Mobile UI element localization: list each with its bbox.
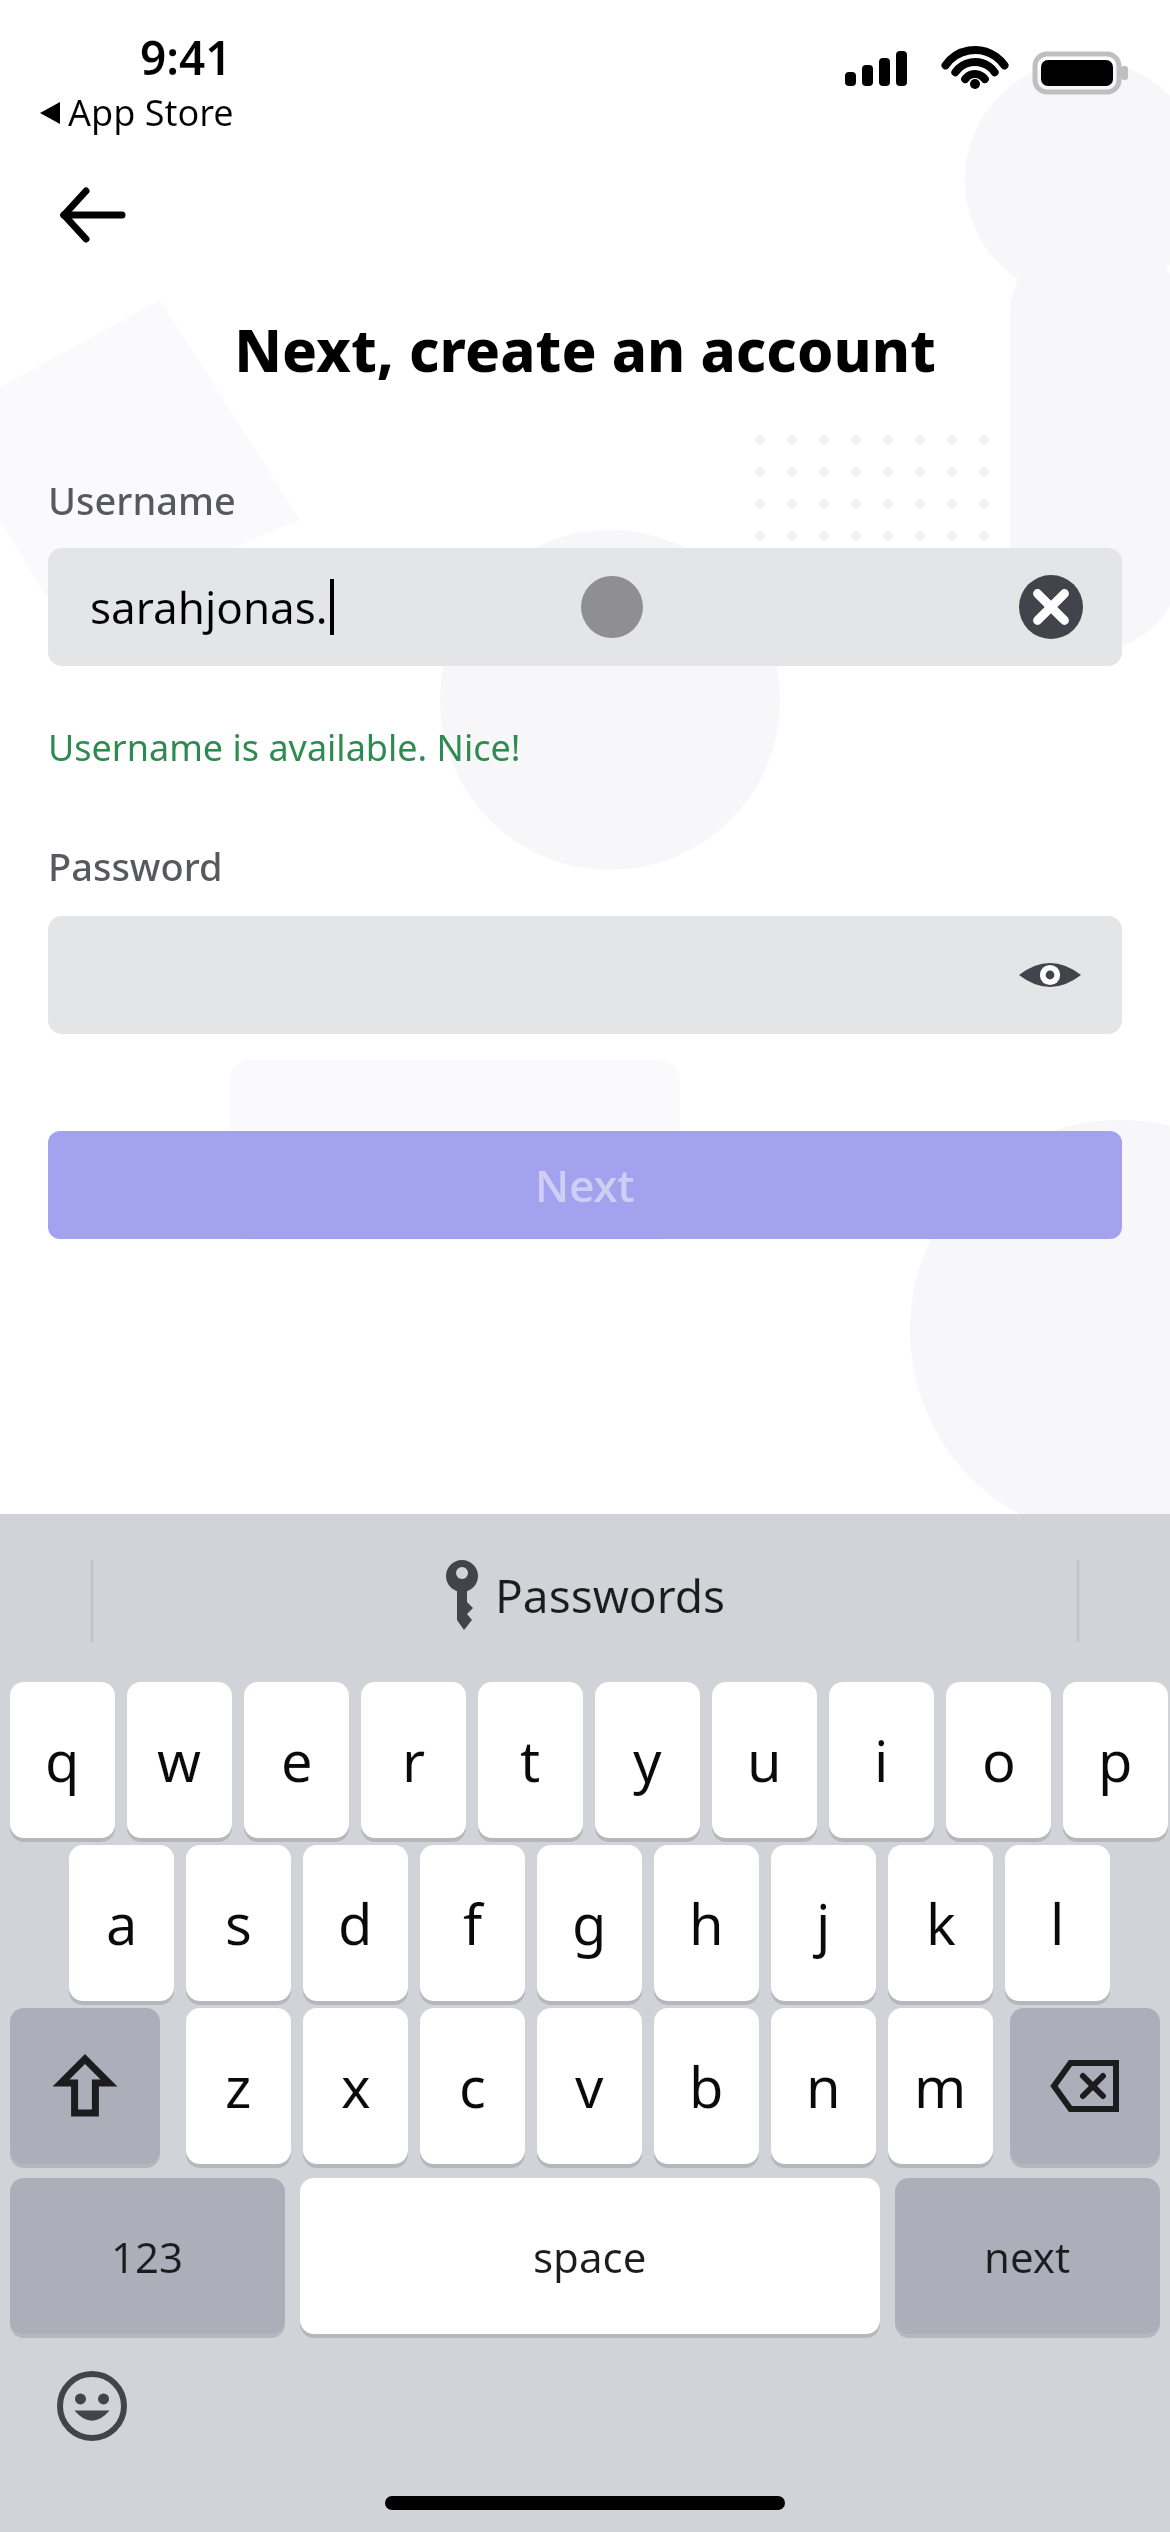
button[interactable]: k xyxy=(888,1845,993,2001)
staticText: Next xyxy=(535,1155,635,1215)
button[interactable]: a xyxy=(69,1845,174,2001)
staticText: next xyxy=(984,2228,1071,2285)
staticText: d xyxy=(338,1885,373,1961)
button[interactable]: l xyxy=(1005,1845,1110,2001)
staticText: a xyxy=(106,1885,138,1961)
staticText: o xyxy=(982,1722,1016,1798)
staticText: z xyxy=(225,2048,252,2124)
staticText: p xyxy=(1098,1722,1133,1798)
staticText: u xyxy=(747,1722,782,1798)
button[interactable]: space xyxy=(300,2178,880,2334)
staticText: l xyxy=(1050,1885,1065,1961)
button[interactable]: d xyxy=(303,1845,408,2001)
staticText: f xyxy=(463,1885,483,1961)
staticText: c xyxy=(459,2048,486,2124)
staticText: i xyxy=(874,1722,889,1798)
staticText: m xyxy=(914,2048,967,2124)
button[interactable]: c xyxy=(420,2008,525,2164)
button[interactable]: sarahjonas. xyxy=(48,548,1122,666)
staticText: space xyxy=(533,2228,647,2285)
button[interactable]: Back xyxy=(36,160,146,270)
button[interactable]: Clear text xyxy=(1018,574,1084,640)
staticText: Next, create an account xyxy=(0,310,1170,389)
button[interactable]: u xyxy=(712,1682,817,1838)
button[interactable]: Shift xyxy=(10,2008,160,2164)
button[interactable]: Next xyxy=(48,1131,1122,1239)
button[interactable]: s xyxy=(186,1845,291,2001)
staticText: g xyxy=(572,1885,607,1961)
staticText: r xyxy=(402,1722,426,1798)
button[interactable]: w xyxy=(127,1682,232,1838)
staticText: Password xyxy=(48,840,223,892)
button[interactable]: Backspace xyxy=(1010,2008,1160,2164)
button[interactable]: n xyxy=(771,2008,876,2164)
button[interactable]: next xyxy=(895,2178,1160,2334)
button[interactable]: f xyxy=(420,1845,525,2001)
button[interactable]: v xyxy=(537,2008,642,2164)
staticText: Username xyxy=(48,474,236,526)
button[interactable]: i xyxy=(829,1682,934,1838)
staticText: n xyxy=(806,2048,841,2124)
button[interactable]: Emoji keyboard xyxy=(48,2362,136,2450)
button[interactable]: x xyxy=(303,2008,408,2164)
staticText: h xyxy=(689,1885,724,1961)
button[interactable]: z xyxy=(186,2008,291,2164)
staticText: w xyxy=(157,1722,202,1798)
staticText: 9:41 xyxy=(140,26,232,89)
staticText: t xyxy=(520,1722,541,1798)
staticText: sarahjonas. xyxy=(90,577,328,637)
button[interactable]: Show password xyxy=(48,916,1122,1034)
staticText: App Store xyxy=(68,88,234,137)
button[interactable]: y xyxy=(595,1682,700,1838)
button[interactable]: Passwords xyxy=(445,1558,726,1632)
staticText: x xyxy=(341,2048,371,2124)
button[interactable]: App Store xyxy=(40,88,234,137)
staticText: s xyxy=(225,1885,252,1961)
staticText: 123 xyxy=(111,2228,184,2285)
staticText: q xyxy=(45,1722,80,1798)
button[interactable]: m xyxy=(888,2008,993,2164)
staticText: k xyxy=(926,1885,956,1961)
button[interactable]: p xyxy=(1063,1682,1168,1838)
staticText: b xyxy=(689,2048,724,2124)
staticText: Passwords xyxy=(495,1564,726,1627)
button[interactable]: e xyxy=(244,1682,349,1838)
button[interactable]: 123 xyxy=(10,2178,285,2334)
button[interactable]: b xyxy=(654,2008,759,2164)
staticText: Username is available. Nice! xyxy=(48,723,521,772)
staticText: j xyxy=(816,1885,831,1961)
button[interactable]: t xyxy=(478,1682,583,1838)
button[interactable]: r xyxy=(361,1682,466,1838)
button[interactable]: g xyxy=(537,1845,642,2001)
button[interactable]: o xyxy=(946,1682,1051,1838)
staticText: e xyxy=(281,1722,313,1798)
staticText: v xyxy=(575,2048,604,2124)
button[interactable]: q xyxy=(10,1682,115,1838)
button[interactable]: Show password xyxy=(1014,939,1086,1011)
staticText: y xyxy=(633,1722,662,1798)
button[interactable]: h xyxy=(654,1845,759,2001)
button[interactable]: j xyxy=(771,1845,876,2001)
